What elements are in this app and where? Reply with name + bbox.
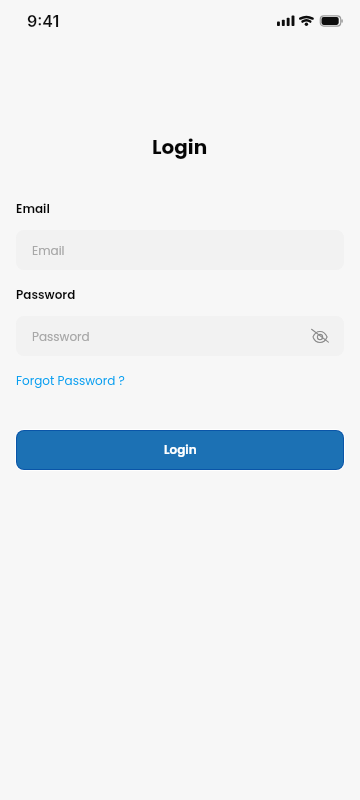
button[interactable]: Password	[16, 316, 344, 356]
button[interactable]: Show password	[308, 325, 332, 349]
staticText: Password	[32, 328, 90, 345]
staticText: Email	[16, 200, 50, 217]
staticText: Login	[152, 133, 208, 161]
staticText: Password	[16, 286, 76, 303]
staticText: 9:41	[27, 11, 60, 30]
staticText: Login	[164, 441, 197, 458]
staticText: Email	[32, 242, 65, 259]
button[interactable]: Forgot Password ?	[16, 372, 125, 389]
button[interactable]: Login	[17, 431, 343, 469]
staticText: Forgot Password ?	[16, 372, 125, 389]
button[interactable]: Email	[16, 230, 344, 270]
